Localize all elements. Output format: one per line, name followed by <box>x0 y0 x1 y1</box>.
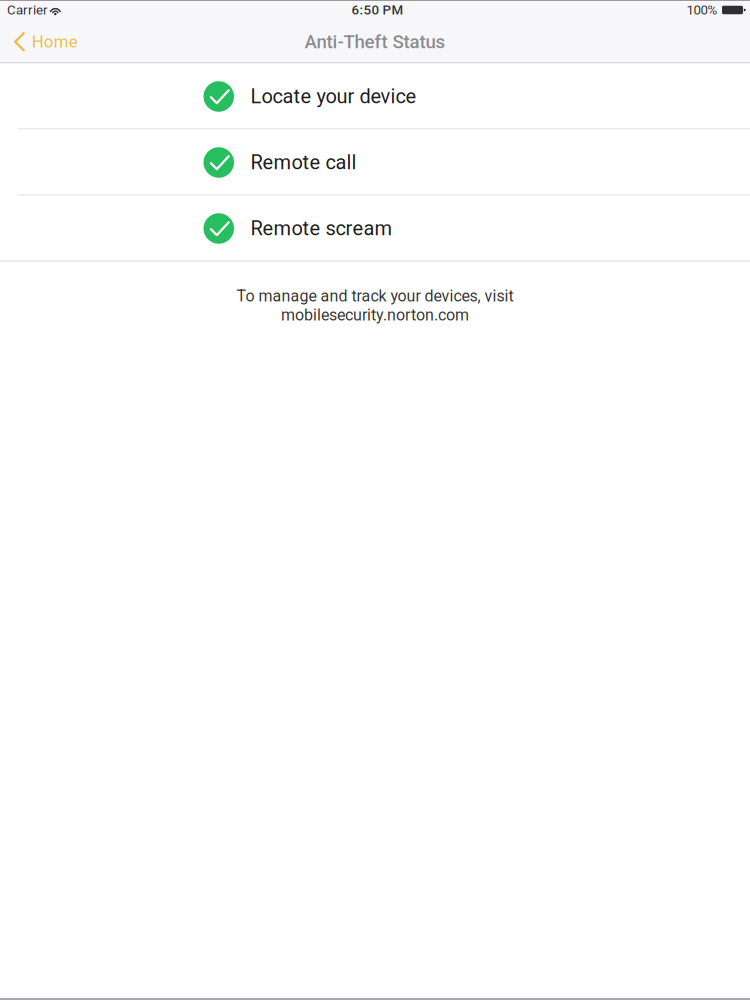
button[interactable]: Home <box>0 20 90 63</box>
staticText: Remote scream <box>250 217 392 240</box>
staticText: Locate your device <box>250 85 416 108</box>
staticText: mobilesecurity.norton.com <box>281 306 469 324</box>
staticText: To manage and track your devices, visit <box>236 287 513 305</box>
staticText: 6:50 PM <box>351 2 403 18</box>
staticText: Remote call <box>250 151 356 174</box>
staticText: Carrier <box>7 2 48 18</box>
staticText: Home <box>32 32 78 51</box>
button[interactable]: Remote scream <box>0 195 750 261</box>
button[interactable]: Remote call <box>0 129 750 195</box>
staticText: Anti-Theft Status <box>304 31 445 53</box>
staticText: 100% <box>686 2 717 18</box>
button[interactable]: Locate your device <box>0 63 750 129</box>
